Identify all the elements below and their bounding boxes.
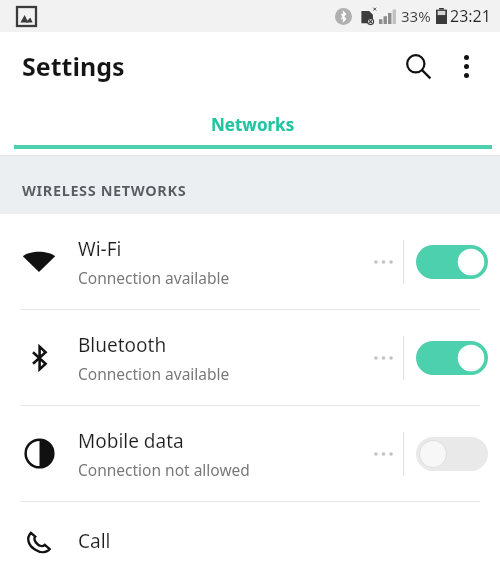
staticText: Connection not allowed [78, 459, 250, 480]
button[interactable]: Mobile data switch [404, 423, 500, 485]
staticText: Wi-Fi [78, 236, 122, 262]
staticText: Connection available [78, 363, 230, 384]
staticText: WIRELESS NETWORKS [22, 180, 187, 200]
button[interactable]: Wi-Fi [0, 214, 500, 309]
staticText: Connection available [78, 267, 230, 288]
button[interactable]: Wi-Fi menu [363, 231, 403, 293]
button[interactable]: Bluetooth menu [363, 327, 403, 389]
staticText: Call [78, 528, 111, 554]
button[interactable]: Mobile data menu [363, 423, 403, 485]
button[interactable]: Networks [6, 100, 500, 149]
button[interactable]: Bluetooth switch [404, 327, 500, 389]
staticText: Mobile data [78, 428, 184, 454]
button[interactable]: Bluetooth [0, 310, 500, 405]
button[interactable]: More options [444, 44, 488, 88]
staticText: Bluetooth [78, 332, 167, 358]
button[interactable]: Call [0, 502, 500, 580]
button[interactable]: Wi-Fi switch [404, 231, 500, 293]
staticText: Settings [22, 49, 125, 83]
staticText: 23:21 [450, 5, 491, 27]
button[interactable]: Search [392, 40, 444, 92]
staticText: 33% [401, 6, 431, 26]
button[interactable]: Mobile data [0, 406, 500, 501]
staticText: Networks [211, 113, 295, 136]
